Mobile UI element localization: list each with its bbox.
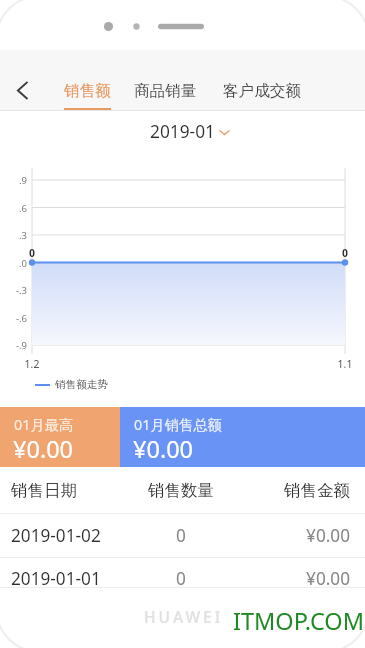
staticText: ITMOP.COM	[233, 605, 365, 637]
staticText: 2019-01-01	[11, 567, 101, 590]
staticText: ¥0.00	[250, 524, 350, 547]
button[interactable]: 2019-01-02	[0, 514, 365, 557]
staticText: 销售日期	[11, 480, 77, 501]
staticText: 2019-01	[150, 120, 215, 144]
staticText: 商品销量	[134, 81, 197, 101]
button[interactable]: 销售日期	[0, 467, 365, 513]
staticText: 0	[131, 567, 231, 590]
button[interactable]: 销售额	[54, 50, 121, 111]
staticText: 0	[22, 246, 42, 260]
staticText: HUAWEI	[144, 606, 224, 627]
staticText: 1.1	[335, 357, 355, 371]
staticText: 销售数量	[131, 480, 231, 501]
staticText: 0	[335, 246, 355, 260]
staticText: -.6	[0, 312, 27, 325]
staticText: .6	[0, 202, 27, 215]
staticText: ¥0.00	[133, 433, 194, 465]
staticText: 01月销售总额	[134, 415, 222, 435]
staticText: .9	[0, 174, 27, 187]
staticText: .0	[0, 257, 27, 270]
staticText: -.3	[0, 284, 27, 297]
staticText: 销售金额	[250, 480, 350, 501]
button[interactable]: 商品销量	[124, 50, 207, 111]
staticText: ¥0.00	[250, 567, 350, 590]
staticText: 销售额走势	[55, 378, 108, 391]
staticText: 2019-01-02	[11, 524, 101, 547]
staticText: 销售额	[64, 81, 111, 101]
staticText: 01月最高	[14, 415, 74, 435]
button[interactable]: Back	[2, 62, 42, 102]
staticText: 客户成交额	[223, 81, 301, 101]
staticText: 1.2	[22, 357, 42, 371]
button[interactable]: 01月最高	[0, 407, 120, 467]
button[interactable]: 2019-01	[150, 120, 229, 144]
button[interactable]: 01月销售总额	[120, 407, 365, 467]
button[interactable]: 客户成交额	[212, 50, 311, 111]
button[interactable]: 2019-01-01	[0, 558, 365, 598]
staticText: 0	[131, 524, 231, 547]
staticText: .3	[0, 229, 27, 242]
staticText: -.9	[0, 339, 27, 352]
staticText: ¥0.00	[13, 433, 74, 465]
